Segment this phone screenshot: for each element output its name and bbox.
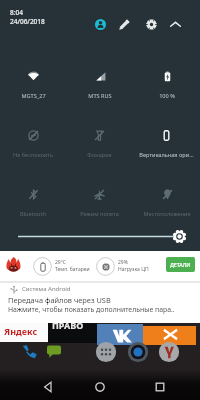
staticText: Режим полета bbox=[80, 210, 119, 218]
staticText: Передача файлов через USB bbox=[8, 295, 111, 305]
button[interactable]: App bbox=[127, 341, 149, 363]
button[interactable]: Не беспокоить bbox=[0, 115, 66, 174]
button[interactable]: MTS RUS bbox=[66, 56, 133, 115]
staticText: 8:04 bbox=[10, 8, 23, 17]
staticText: Вертикальная ори… bbox=[139, 151, 194, 159]
staticText: 24/06/2018 bbox=[10, 17, 45, 26]
button[interactable]: Brightness bbox=[0, 225, 200, 249]
staticText: Фонарик bbox=[87, 151, 112, 159]
button[interactable]: Режим полета bbox=[66, 174, 133, 233]
button[interactable]: App bbox=[95, 341, 117, 363]
button[interactable]: Home bbox=[84, 375, 116, 399]
button[interactable]: Settings bbox=[141, 14, 161, 34]
staticText: Яндекс bbox=[4, 325, 38, 337]
button[interactable]: MGTS_27 bbox=[0, 56, 66, 115]
button[interactable]: Back bbox=[32, 375, 64, 399]
staticText: 29% bbox=[118, 259, 128, 266]
staticText: MTS RUS bbox=[88, 92, 112, 100]
staticText: Bluetooth bbox=[20, 210, 46, 218]
button[interactable]: Система Android bbox=[0, 283, 200, 323]
button[interactable]: Bluetooth bbox=[0, 174, 66, 233]
button[interactable]: App bbox=[158, 341, 180, 363]
button[interactable]: 100 % bbox=[133, 56, 200, 115]
staticText: ДЕТАЛИ bbox=[170, 261, 191, 268]
button[interactable]: ДЕТАЛИ bbox=[166, 257, 195, 272]
button[interactable]: Местоположение bbox=[133, 174, 200, 233]
button[interactable]: Вертикальная ори… bbox=[133, 115, 200, 174]
staticText: 100 % bbox=[159, 92, 175, 100]
button[interactable]: Collapse bbox=[165, 14, 185, 34]
button[interactable]: Фонарик bbox=[66, 115, 133, 174]
button[interactable]: 29°C bbox=[0, 251, 200, 281]
staticText: 29°C bbox=[55, 259, 67, 266]
staticText: Система Android bbox=[22, 285, 71, 293]
button[interactable]: Account bbox=[90, 14, 110, 34]
staticText: Темп. батареи bbox=[55, 266, 90, 273]
button[interactable]: App bbox=[22, 343, 38, 359]
staticText: Нагрузка ЦП bbox=[118, 266, 149, 273]
staticText: Нажмите, чтобы показать дополнительные п… bbox=[8, 305, 200, 314]
button[interactable]: Edit bbox=[114, 14, 134, 34]
staticText: ПРАВО bbox=[52, 319, 84, 331]
staticText: MGTS_27 bbox=[21, 92, 46, 100]
button[interactable]: App bbox=[46, 343, 62, 359]
staticText: Местоположение bbox=[143, 210, 191, 218]
button[interactable]: Recents bbox=[144, 375, 176, 399]
staticText: Не беспокоить bbox=[13, 151, 53, 159]
